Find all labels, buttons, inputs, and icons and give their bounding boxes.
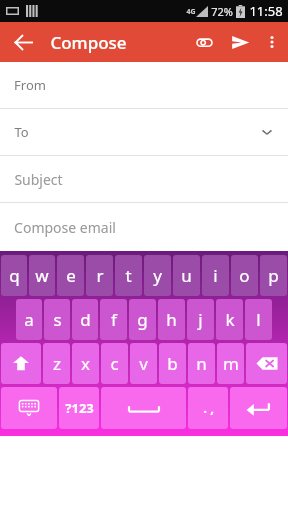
button[interactable]: x: [72, 343, 99, 384]
staticText: p: [268, 264, 279, 287]
staticText: q: [9, 264, 20, 287]
button[interactable]: k: [216, 299, 243, 340]
staticText: a: [24, 308, 34, 331]
staticText: 72%: [211, 4, 233, 19]
button[interactable]: t: [115, 255, 142, 296]
button[interactable]: h: [158, 299, 185, 340]
button[interactable]: r: [86, 255, 113, 296]
staticText: 4G: [186, 7, 196, 17]
staticText: t: [125, 264, 132, 287]
button[interactable]: From: [0, 62, 288, 108]
staticText: w: [35, 264, 49, 287]
staticText: 11:58: [249, 2, 283, 20]
staticText: n: [196, 352, 207, 375]
staticText: o: [239, 264, 250, 287]
staticText: g: [137, 308, 148, 331]
staticText: Compose: [50, 31, 127, 54]
staticText: d: [80, 308, 91, 331]
button[interactable]: u: [173, 255, 200, 296]
staticText: b: [167, 352, 178, 375]
button[interactable]: Subject: [0, 156, 288, 202]
staticText: c: [110, 352, 119, 375]
button[interactable]: More options: [258, 28, 286, 56]
button[interactable]: f: [100, 299, 127, 340]
staticText: m: [223, 352, 239, 375]
button[interactable]: Send: [222, 24, 258, 60]
button[interactable]: c: [101, 343, 128, 384]
button[interactable]: q: [1, 255, 27, 296]
staticText: s: [53, 308, 62, 331]
staticText: i: [213, 264, 218, 287]
button[interactable]: l: [245, 299, 272, 340]
button[interactable]: Shift: [1, 343, 41, 384]
staticText: Subject: [14, 170, 63, 189]
staticText: k: [225, 308, 235, 331]
staticText: ?123: [65, 399, 94, 417]
staticText: x: [81, 352, 90, 375]
button[interactable]: v: [130, 343, 157, 384]
staticText: From: [14, 76, 46, 94]
staticText: r: [96, 264, 104, 287]
staticText: y: [153, 264, 162, 287]
button[interactable]: Compose email: [0, 203, 288, 251]
button[interactable]: To: [0, 109, 288, 155]
staticText: u: [181, 264, 192, 287]
button[interactable]: p: [260, 255, 287, 296]
staticText: f: [111, 308, 117, 331]
staticText: l: [256, 308, 261, 331]
staticText: v: [139, 352, 148, 375]
button[interactable]: z: [43, 343, 70, 384]
button[interactable]: g: [129, 299, 156, 340]
button[interactable]: i: [202, 255, 229, 296]
button[interactable]: w: [29, 255, 55, 296]
staticText: j: [198, 308, 203, 331]
button[interactable]: e: [57, 255, 84, 296]
button[interactable]: Backspace: [246, 343, 287, 384]
button[interactable]: Attach file: [186, 24, 222, 60]
button[interactable]: Switch keyboard: [1, 387, 57, 429]
button[interactable]: b: [159, 343, 186, 384]
button[interactable]: a: [16, 299, 42, 340]
button[interactable]: ?123: [59, 387, 99, 429]
button[interactable]: Back: [8, 27, 38, 57]
button[interactable]: y: [144, 255, 171, 296]
button[interactable]: o: [231, 255, 258, 296]
button[interactable]: Enter: [230, 387, 287, 429]
button[interactable]: m: [217, 343, 244, 384]
staticText: . ,: [203, 399, 214, 417]
staticText: e: [66, 264, 76, 287]
staticText: h: [166, 308, 177, 331]
button[interactable]: s: [44, 299, 70, 340]
button[interactable]: . ,: [188, 387, 228, 429]
staticText: To: [14, 123, 29, 141]
button[interactable]: Space: [101, 387, 186, 429]
staticText: z: [53, 352, 61, 375]
staticText: Compose email: [14, 218, 116, 237]
button[interactable]: n: [188, 343, 215, 384]
button[interactable]: j: [187, 299, 214, 340]
button[interactable]: d: [72, 299, 98, 340]
